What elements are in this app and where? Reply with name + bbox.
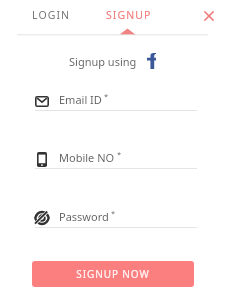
staticText: Password	[59, 209, 109, 224]
staticText: Email ID	[59, 92, 102, 107]
staticText: LOGIN	[32, 8, 71, 22]
staticText: *	[111, 208, 116, 218]
staticText: Signup using	[69, 54, 137, 69]
button[interactable]: Signup with Facebook	[143, 53, 159, 69]
button[interactable]: Close	[196, 3, 222, 29]
staticText: *	[104, 91, 109, 101]
button[interactable]: SIGNUP	[99, 3, 159, 27]
staticText: SIGNUP NOW	[76, 267, 150, 281]
staticText: *	[117, 149, 122, 159]
button[interactable]: SIGNUP NOW	[32, 261, 194, 287]
staticText: SIGNUP	[106, 8, 152, 22]
button[interactable]: LOGIN	[25, 3, 78, 27]
staticText: Mobile NO	[59, 150, 115, 165]
